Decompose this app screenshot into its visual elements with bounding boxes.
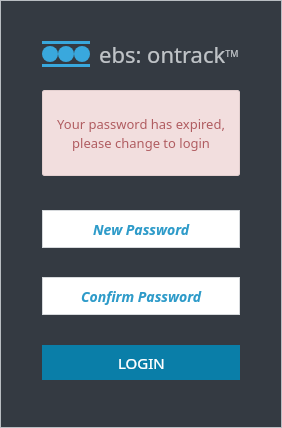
staticText: New Password [93, 220, 190, 239]
staticText: Confirm Password [81, 287, 202, 306]
staticText: LOGIN [118, 353, 165, 373]
staticText: Your password has expired, please change… [56, 115, 226, 152]
button[interactable]: LOGIN [42, 345, 240, 380]
staticText: ebs: ontrackTM [99, 39, 239, 69]
button[interactable]: Confirm Password [42, 277, 240, 315]
button[interactable]: New Password [42, 210, 240, 248]
